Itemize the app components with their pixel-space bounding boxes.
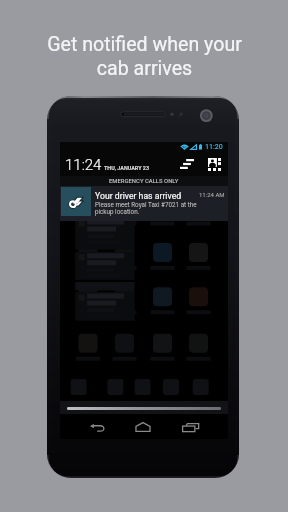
staticText: Your driver has arrived xyxy=(95,191,182,201)
button[interactable]: Back xyxy=(90,424,105,432)
button[interactable]: Home xyxy=(135,422,151,432)
button[interactable]: Your driver has arrived xyxy=(60,186,228,221)
staticText: Please meet Royal Taxi #7021 at the pick… xyxy=(95,201,197,216)
staticText: 11:20 xyxy=(205,143,223,151)
button[interactable]: Recent apps xyxy=(182,423,199,432)
button[interactable]: Quick settings xyxy=(180,159,194,169)
staticText: 11:24 xyxy=(65,156,102,174)
staticText: THU, JANUARY 23 xyxy=(104,165,150,171)
staticText: 11:24 AM xyxy=(199,191,225,198)
button[interactable]: All contacts xyxy=(208,158,221,171)
staticText: Get notified when your cab arrives xyxy=(47,33,242,79)
staticText: EMERGENCY CALLS ONLY xyxy=(109,178,179,185)
